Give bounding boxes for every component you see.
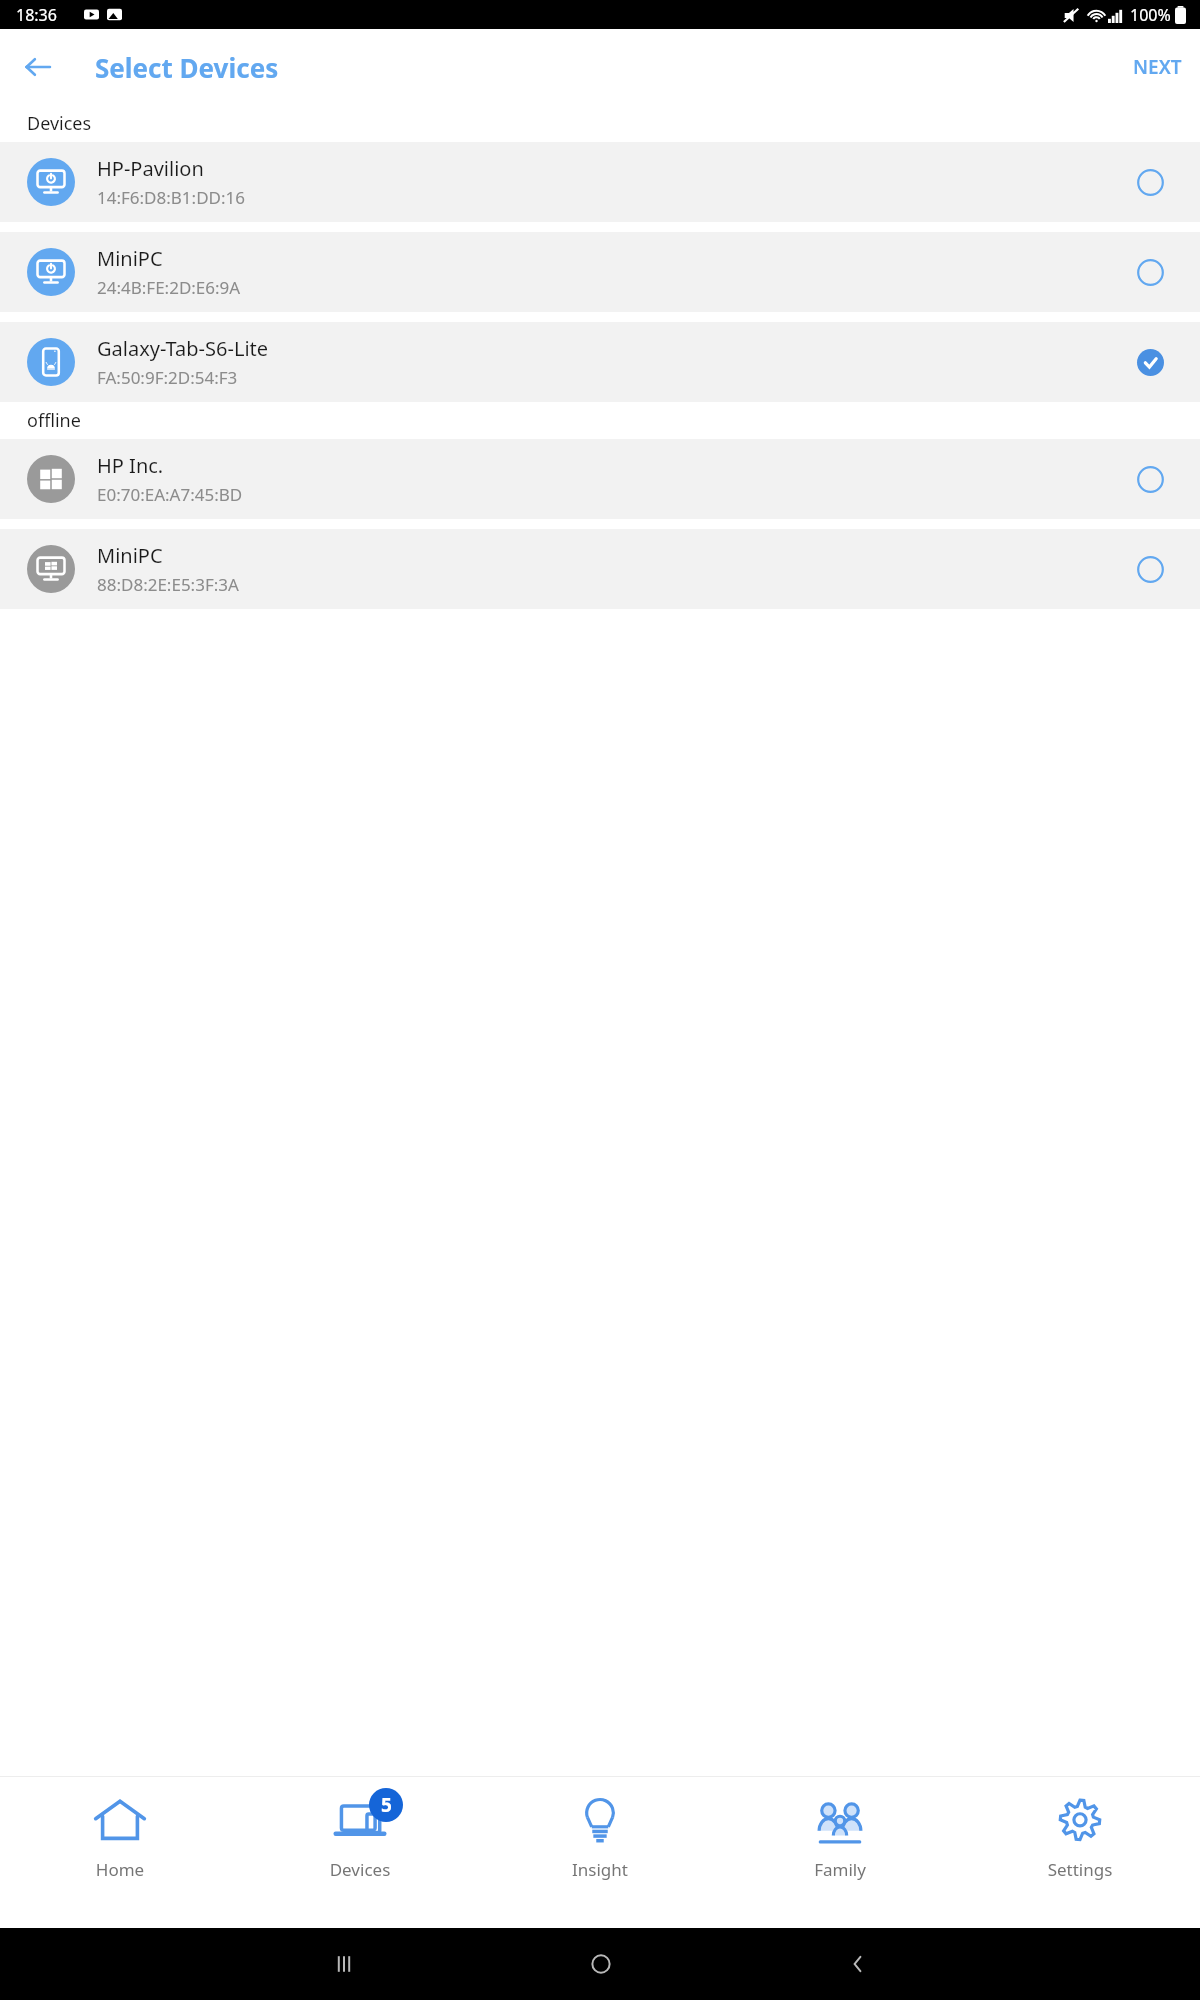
staticText: E0:70:EA:A7:45:BD: [97, 483, 243, 506]
button[interactable]: Selected: [1128, 340, 1172, 384]
button[interactable]: Select device: [1128, 457, 1172, 501]
button[interactable]: Galaxy-Tab-S6-Lite: [0, 322, 1200, 402]
staticText: Devices: [27, 111, 92, 136]
button[interactable]: HP-Pavilion: [0, 142, 1200, 222]
button[interactable]: NEXT: [1115, 44, 1200, 90]
button[interactable]: Select device: [1128, 250, 1172, 294]
button[interactable]: 5: [240, 1776, 480, 1928]
button[interactable]: Family: [720, 1776, 960, 1928]
staticText: HP-Pavilion: [97, 155, 204, 182]
staticText: Insight: [566, 1858, 634, 1881]
staticText: HP Inc.: [97, 452, 164, 479]
button[interactable]: Select device: [1128, 160, 1172, 204]
staticText: NEXT: [1133, 54, 1182, 80]
staticText: 14:F6:D8:B1:DD:16: [97, 186, 245, 209]
staticText: MiniPC: [97, 542, 163, 569]
staticText: FA:50:9F:2D:54:F3: [97, 366, 238, 389]
button[interactable]: Settings: [960, 1776, 1200, 1928]
button[interactable]: Back: [729, 1928, 986, 2000]
button[interactable]: MiniPC: [0, 232, 1200, 312]
staticText: Select Devices: [95, 50, 279, 85]
staticText: Devices: [326, 1858, 394, 1881]
button[interactable]: Select device: [1128, 547, 1172, 591]
button[interactable]: MiniPC: [0, 529, 1200, 609]
staticText: MiniPC: [97, 245, 163, 272]
button[interactable]: Home: [0, 1776, 240, 1928]
button[interactable]: HP Inc.: [0, 439, 1200, 519]
staticText: Home: [86, 1858, 154, 1881]
button[interactable]: Home: [472, 1928, 729, 2000]
staticText: 100%: [1130, 4, 1171, 26]
staticText: 24:4B:FE:2D:E6:9A: [97, 276, 241, 299]
button[interactable]: Insight: [480, 1776, 720, 1928]
staticText: 18:36: [16, 4, 57, 26]
button[interactable]: Back: [14, 43, 62, 91]
staticText: Settings: [1046, 1858, 1114, 1881]
staticText: 88:D8:2E:E5:3F:3A: [97, 573, 239, 596]
staticText: 5: [381, 1792, 392, 1818]
staticText: offline: [27, 408, 81, 433]
button[interactable]: Recents: [215, 1928, 472, 2000]
staticText: Family: [806, 1858, 874, 1881]
staticText: Galaxy-Tab-S6-Lite: [97, 335, 269, 362]
